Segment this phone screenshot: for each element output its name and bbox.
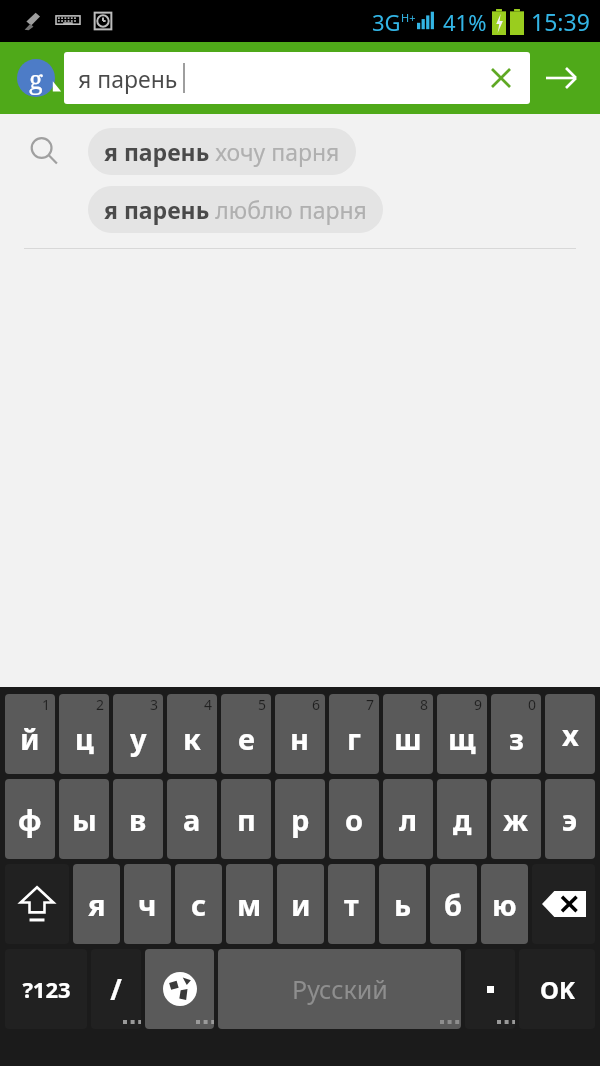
staticText: я парень люблю парня bbox=[104, 194, 367, 225]
button[interactable]: о bbox=[329, 779, 379, 859]
staticText: Русский bbox=[292, 972, 388, 1006]
staticText: и bbox=[291, 885, 311, 924]
button[interactable]: ю bbox=[481, 864, 528, 944]
button[interactable]: ь bbox=[379, 864, 426, 944]
staticText: с bbox=[191, 885, 207, 924]
button[interactable]: ?123 bbox=[5, 949, 87, 1029]
button[interactable]: 9 bbox=[437, 694, 487, 774]
staticText: OK bbox=[540, 973, 575, 1006]
staticText: ?123 bbox=[22, 974, 71, 1004]
staticText: ю bbox=[492, 885, 517, 924]
staticText: е bbox=[238, 719, 255, 758]
staticText: г bbox=[347, 719, 361, 758]
staticText: б bbox=[444, 885, 463, 924]
button[interactable]: д bbox=[437, 779, 487, 859]
staticText: ф bbox=[18, 800, 42, 839]
button[interactable]: ч bbox=[124, 864, 171, 944]
button[interactable]: я парень хочу парня bbox=[0, 122, 600, 180]
staticText: л bbox=[399, 800, 418, 839]
button[interactable]: Search bbox=[530, 47, 592, 109]
staticText: а bbox=[183, 800, 201, 839]
button[interactable]: 6 bbox=[275, 694, 325, 774]
staticText: ь bbox=[394, 885, 412, 924]
staticText: 9 bbox=[474, 695, 483, 714]
staticText: ц bbox=[75, 719, 94, 758]
staticText: ы bbox=[72, 800, 97, 839]
button[interactable]: л bbox=[383, 779, 433, 859]
staticText: g bbox=[29, 61, 43, 96]
staticText: 41% bbox=[443, 7, 487, 37]
staticText: з bbox=[509, 719, 524, 758]
button[interactable]: а bbox=[167, 779, 217, 859]
staticText: к bbox=[183, 719, 201, 758]
staticText: м bbox=[237, 885, 262, 924]
staticText: п bbox=[237, 800, 256, 839]
button[interactable]: Google search options bbox=[8, 50, 64, 106]
button[interactable]: 5 bbox=[221, 694, 271, 774]
staticText: д bbox=[453, 800, 472, 839]
button[interactable]: я bbox=[73, 864, 120, 944]
staticText: х bbox=[562, 715, 579, 754]
staticText: у bbox=[130, 719, 147, 758]
button[interactable]: 7 bbox=[329, 694, 379, 774]
staticText: ш bbox=[394, 719, 422, 758]
staticText: 6 bbox=[312, 695, 321, 714]
button[interactable]: 0 bbox=[491, 694, 541, 774]
button[interactable]: ф bbox=[5, 779, 55, 859]
staticText: 1 bbox=[42, 695, 51, 714]
button[interactable]: 8 bbox=[383, 694, 433, 774]
staticText: р bbox=[291, 800, 310, 839]
staticText: / bbox=[110, 970, 122, 1008]
button[interactable]: ж bbox=[491, 779, 541, 859]
button[interactable]: в bbox=[113, 779, 163, 859]
staticText: э bbox=[562, 800, 578, 839]
staticText: я парень bbox=[78, 63, 178, 94]
button[interactable]: / bbox=[91, 949, 141, 1029]
button[interactable]: р bbox=[275, 779, 325, 859]
button[interactable]: OK bbox=[519, 949, 595, 1029]
button[interactable]: и bbox=[277, 864, 324, 944]
staticText: 8 bbox=[420, 695, 429, 714]
button[interactable]: 4 bbox=[167, 694, 217, 774]
staticText: 7 bbox=[366, 695, 375, 714]
staticText: в bbox=[129, 800, 147, 839]
staticText: 3 bbox=[150, 695, 159, 714]
button[interactable]: я парень bbox=[64, 52, 530, 104]
staticText: 3G bbox=[372, 7, 401, 37]
staticText: ж bbox=[503, 800, 529, 839]
button[interactable]: э bbox=[545, 779, 595, 859]
staticText: я bbox=[88, 885, 106, 924]
staticText: й bbox=[20, 719, 40, 758]
button[interactable]: 2 bbox=[59, 694, 109, 774]
staticText: о bbox=[345, 800, 364, 839]
button[interactable]: Clear query bbox=[480, 57, 522, 99]
staticText: т bbox=[344, 885, 359, 924]
button[interactable]: Backspace bbox=[532, 864, 595, 944]
button[interactable] bbox=[465, 949, 515, 1029]
staticText: 5 bbox=[258, 695, 267, 714]
button[interactable]: п bbox=[221, 779, 271, 859]
staticText: щ bbox=[448, 719, 476, 758]
button[interactable]: ы bbox=[59, 779, 109, 859]
button[interactable]: с bbox=[175, 864, 222, 944]
button[interactable]: х bbox=[545, 694, 595, 774]
button[interactable]: Shift bbox=[5, 864, 69, 944]
staticText: я парень хочу парня bbox=[104, 136, 340, 167]
staticText: 2 bbox=[96, 695, 105, 714]
staticText: 0 bbox=[528, 695, 537, 714]
button[interactable]: я парень люблю парня bbox=[0, 180, 600, 238]
button[interactable]: т bbox=[328, 864, 375, 944]
button[interactable]: Русский bbox=[218, 949, 461, 1029]
staticText: 4 bbox=[204, 695, 213, 714]
button[interactable]: Change keyboard language bbox=[145, 949, 214, 1029]
staticText: ч bbox=[138, 885, 157, 924]
staticText: н bbox=[290, 719, 310, 758]
button[interactable]: м bbox=[226, 864, 273, 944]
button[interactable]: 3 bbox=[113, 694, 163, 774]
staticText: 15:39 bbox=[531, 6, 590, 37]
staticText: H+ bbox=[401, 10, 416, 25]
button[interactable]: б bbox=[430, 864, 477, 944]
button[interactable]: 1 bbox=[5, 694, 55, 774]
